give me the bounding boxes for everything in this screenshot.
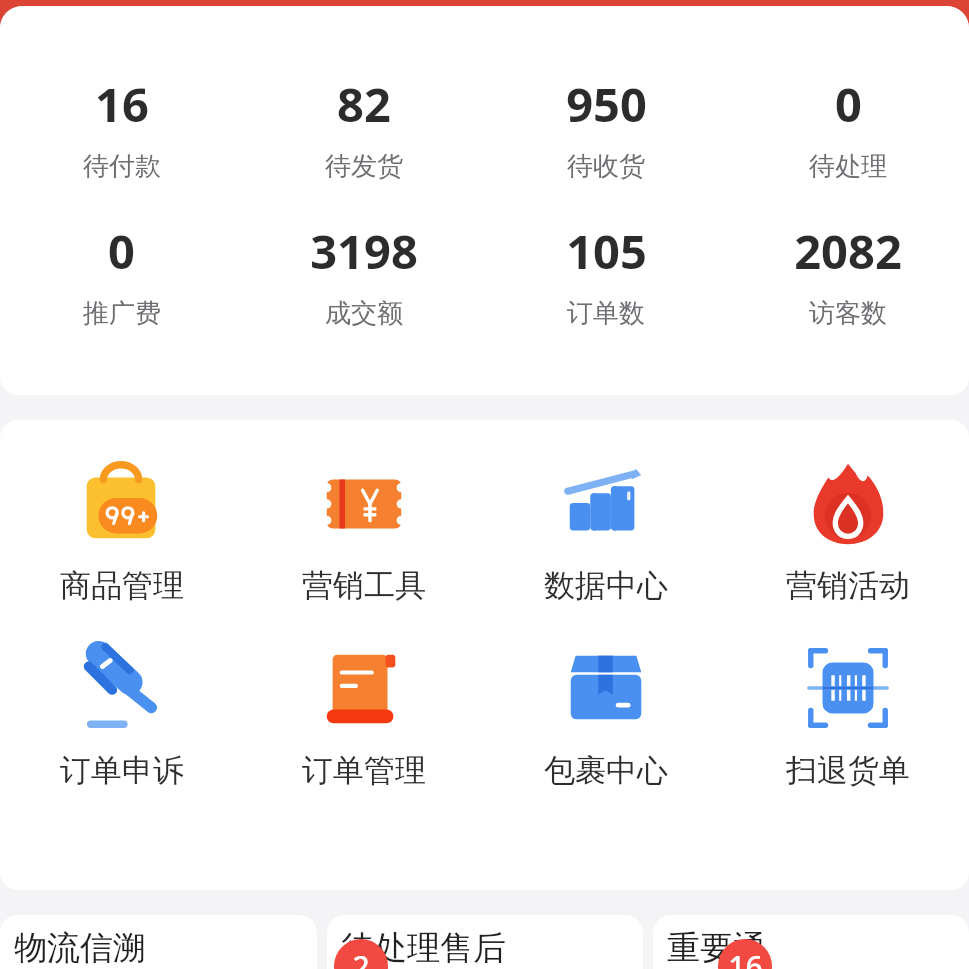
staticText: 待收货 <box>567 150 645 183</box>
button[interactable]: 数据中心 <box>485 452 727 607</box>
staticText: 0 <box>108 219 135 283</box>
staticText: 物流信溯 <box>14 927 146 969</box>
button[interactable]: 扫退货单 <box>727 637 969 792</box>
other: 包裹中心 <box>557 639 655 737</box>
button[interactable]: 订单管理 <box>243 637 485 792</box>
staticText: 2 <box>352 946 370 969</box>
button[interactable]: 82 <box>243 68 485 187</box>
other: 订单管理 <box>315 639 413 737</box>
staticText: 订单申诉 <box>60 751 184 790</box>
staticText: 商品管理 <box>60 566 184 605</box>
staticText: 营销活动 <box>786 566 910 605</box>
other: 商品管理 <box>73 454 171 552</box>
button[interactable]: 重要通 <box>653 915 969 969</box>
staticText: 数据中心 <box>544 566 668 605</box>
button[interactable]: 待处理售后 <box>327 915 643 969</box>
staticText: 营销工具 <box>302 566 426 605</box>
staticText: 访客数 <box>809 297 887 330</box>
staticText: 950 <box>566 72 647 136</box>
staticText: 重要通 <box>667 927 766 969</box>
staticText: 2082 <box>794 219 902 283</box>
other: 订单申诉 <box>73 639 171 737</box>
staticText: 包裹中心 <box>544 751 668 790</box>
staticText: 订单管理 <box>302 751 426 790</box>
staticText: 0 <box>835 72 862 136</box>
staticText: 推广费 <box>83 297 161 330</box>
button[interactable]: 950 <box>485 68 727 187</box>
staticText: 待处理售后 <box>341 927 506 969</box>
staticText: 成交额 <box>325 297 403 330</box>
staticText: 待发货 <box>325 150 403 183</box>
staticText: 16 <box>95 72 149 136</box>
button[interactable]: 营销工具 <box>243 452 485 607</box>
button[interactable]: 2082 <box>727 215 969 334</box>
other: 营销活动 <box>799 454 897 552</box>
staticText: 待付款 <box>83 150 161 183</box>
button[interactable]: 105 <box>485 215 727 334</box>
button[interactable]: 营销活动 <box>727 452 969 607</box>
button[interactable]: 0 <box>0 215 243 334</box>
button[interactable]: 0 <box>727 68 969 187</box>
button[interactable]: 3198 <box>243 215 485 334</box>
staticText: 3198 <box>310 219 418 283</box>
button[interactable]: 16 <box>0 68 243 187</box>
button[interactable]: 包裹中心 <box>485 637 727 792</box>
staticText: 扫退货单 <box>786 751 910 790</box>
other: 数据中心 <box>557 454 655 552</box>
staticText: 订单数 <box>567 297 645 330</box>
other: 扫退货单 <box>799 639 897 737</box>
staticText: 105 <box>566 219 647 283</box>
button[interactable]: 订单申诉 <box>0 637 243 792</box>
other: 营销工具 <box>315 454 413 552</box>
staticText: 16 <box>728 946 763 969</box>
button[interactable]: 物流信溯 <box>0 915 317 969</box>
staticText: 待处理 <box>809 150 887 183</box>
staticText: 82 <box>337 72 391 136</box>
button[interactable]: 商品管理 <box>0 452 243 607</box>
